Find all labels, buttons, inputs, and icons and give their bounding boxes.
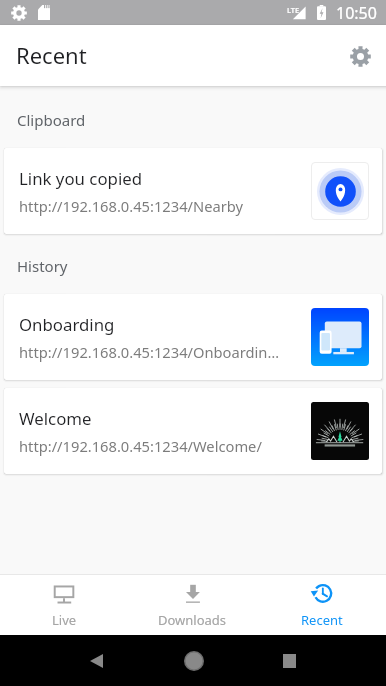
staticText: 10:50: [336, 2, 377, 24]
staticText: http://192.168.0.45:1234/Nearby: [19, 196, 243, 216]
button[interactable]: Recent: [257, 575, 386, 635]
button[interactable]: Settings: [338, 34, 382, 78]
staticText: Clipboard: [17, 110, 86, 130]
staticText: Live: [52, 611, 77, 629]
staticText: Welcome: [19, 407, 92, 430]
button[interactable]: Onboarding: [4, 294, 382, 380]
staticText: Downloads: [158, 611, 227, 629]
staticText: Recent: [16, 40, 87, 70]
button[interactable]: Link you copied: [4, 148, 382, 234]
staticText: History: [17, 256, 68, 276]
staticText: http://192.168.0.45:1234/Onboardin…: [19, 342, 279, 362]
staticText: Onboarding: [19, 313, 115, 336]
button[interactable]: Recents: [265, 636, 314, 685]
staticText: Link you copied: [19, 167, 143, 190]
button[interactable]: Home: [169, 636, 218, 685]
button[interactable]: Downloads: [128, 575, 257, 635]
staticText: Recent: [301, 611, 343, 629]
button[interactable]: Back: [72, 636, 121, 685]
button[interactable]: Live: [0, 575, 128, 635]
staticText: LTE: [287, 5, 300, 15]
staticText: http://192.168.0.45:1234/Welcome/: [19, 436, 262, 456]
button[interactable]: Welcome: [4, 388, 382, 474]
